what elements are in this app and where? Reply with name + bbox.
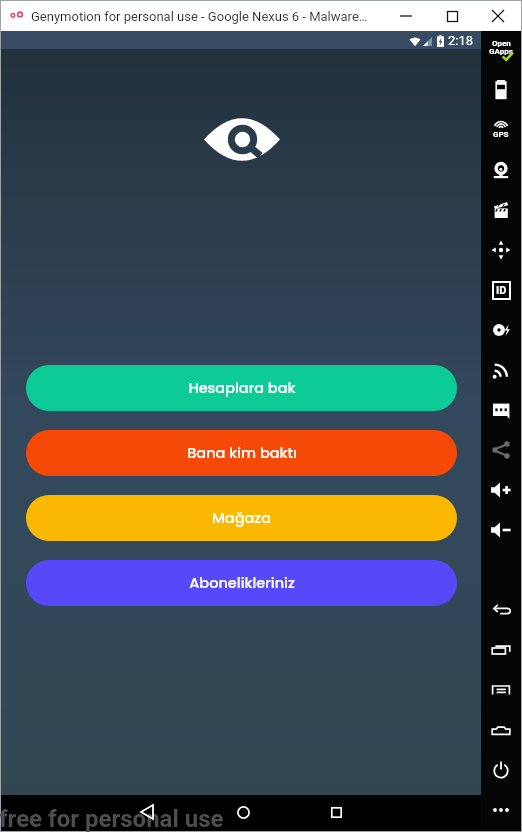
staticText: Abonelikleriniz xyxy=(189,573,295,593)
button[interactable]: Volume down xyxy=(481,517,521,543)
button[interactable]: Screencast xyxy=(481,197,521,223)
staticText: ID xyxy=(496,284,507,297)
button[interactable]: Identifiers xyxy=(481,277,521,303)
staticText: free for personal use xyxy=(0,805,224,832)
button[interactable]: Camera xyxy=(481,157,521,183)
staticText: GApps xyxy=(489,47,513,56)
button[interactable]: Disk IO xyxy=(481,317,521,343)
button[interactable]: Network xyxy=(481,357,521,383)
button[interactable]: Home xyxy=(481,717,521,743)
button[interactable]: Accelerometer xyxy=(481,237,521,263)
button[interactable]: Recents xyxy=(481,637,521,663)
button[interactable]: Home xyxy=(230,799,256,825)
button[interactable]: Close xyxy=(475,1,521,31)
button[interactable]: Abonelikleriniz xyxy=(26,560,457,606)
button[interactable]: Maximize xyxy=(429,1,475,31)
button[interactable]: Hesaplara bak xyxy=(26,365,457,411)
staticText: Open xyxy=(492,39,511,48)
staticText: Hesaplara bak xyxy=(188,378,296,398)
button[interactable]: GPS xyxy=(481,117,521,143)
button[interactable]: Bana kim baktı xyxy=(26,430,457,476)
button[interactable]: Phone xyxy=(481,397,521,423)
button[interactable]: Menu xyxy=(481,677,521,703)
button[interactable]: Back xyxy=(481,597,521,623)
button[interactable]: Mağaza xyxy=(26,495,457,541)
button[interactable]: Recents xyxy=(323,799,349,825)
button[interactable]: Back xyxy=(134,799,160,825)
staticText: Bana kim baktı xyxy=(187,443,297,463)
button[interactable]: Volume up xyxy=(481,477,521,503)
staticText: Genymotion for personal use - Google Nex… xyxy=(31,9,368,24)
button[interactable]: Power xyxy=(481,757,521,783)
button[interactable]: More xyxy=(481,797,521,823)
staticText: 2:18 xyxy=(448,33,474,48)
button[interactable]: Share xyxy=(481,437,521,463)
staticText: Mağaza xyxy=(212,508,271,528)
button[interactable]: Minimize xyxy=(383,1,429,31)
staticText: GPS xyxy=(493,130,509,139)
button[interactable]: Open GApps xyxy=(481,37,521,63)
button[interactable]: Battery xyxy=(481,77,521,103)
